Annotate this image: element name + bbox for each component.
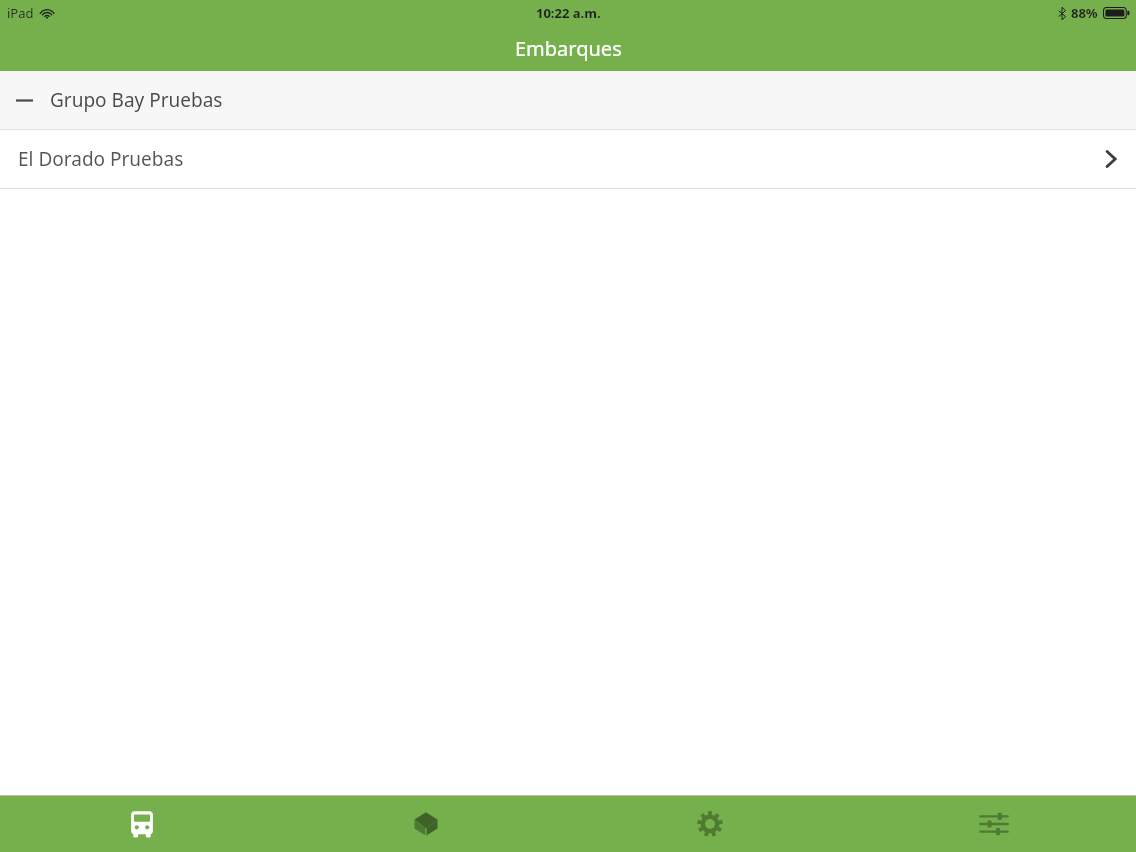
button[interactable]: Paquetes bbox=[284, 796, 568, 852]
button[interactable]: El Dorado Pruebas bbox=[0, 130, 1136, 188]
staticText: Grupo Bay Pruebas bbox=[50, 87, 223, 113]
staticText: 10:22 a.m. bbox=[536, 4, 601, 22]
staticText: 88% bbox=[1071, 4, 1098, 22]
button[interactable]: Filtros bbox=[852, 796, 1136, 852]
button[interactable]: Embarques bbox=[0, 796, 284, 852]
staticText: Embarques bbox=[515, 35, 622, 62]
staticText: El Dorado Pruebas bbox=[18, 146, 184, 172]
button[interactable]: Configuracion bbox=[568, 796, 852, 852]
staticText: iPad bbox=[7, 4, 34, 22]
button[interactable]: Grupo Bay Pruebas bbox=[0, 71, 1136, 129]
